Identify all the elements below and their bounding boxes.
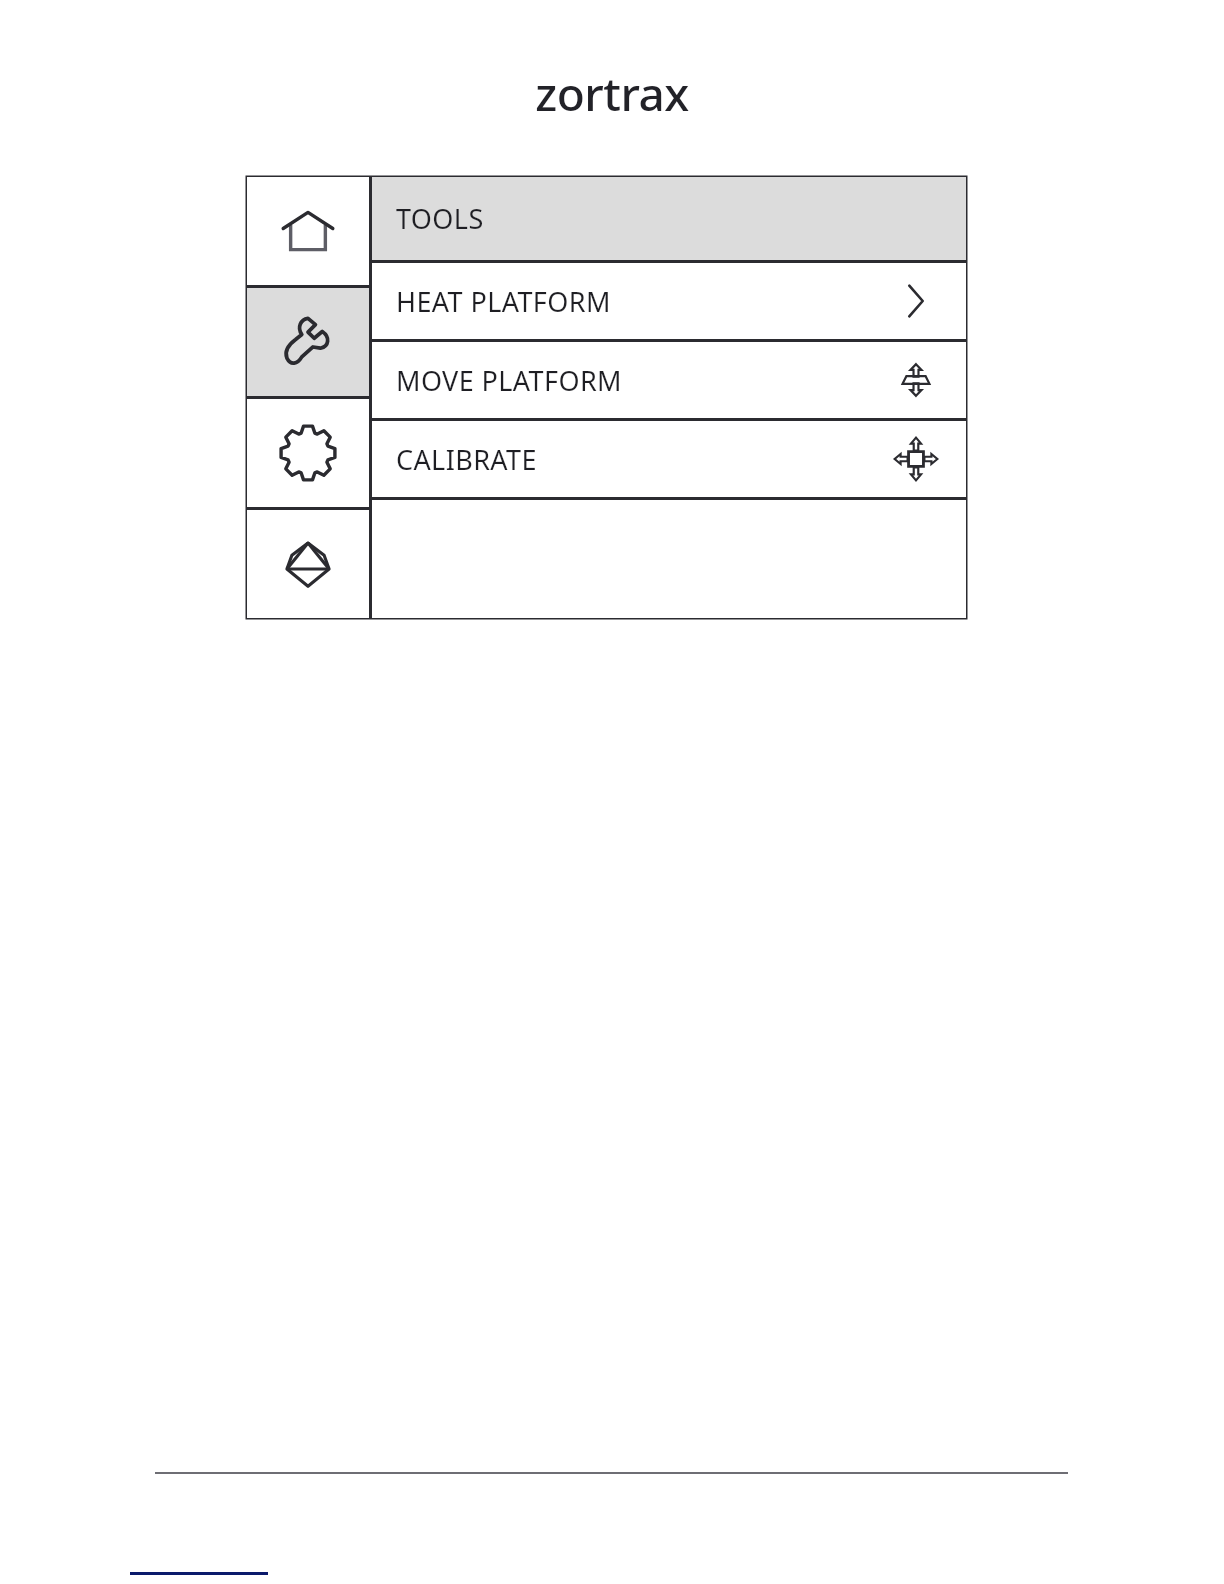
staticText: zortrax	[0, 62, 1224, 125]
staticText: TOOLS	[396, 200, 484, 237]
button[interactable]: Tools	[247, 288, 369, 396]
button[interactable]: Settings	[247, 399, 369, 507]
staticText: CALIBRATE	[396, 441, 537, 478]
staticText: HEAT PLATFORM	[396, 283, 611, 320]
button[interactable]: HEAT PLATFORM	[372, 263, 966, 339]
staticText: MOVE PLATFORM	[396, 362, 622, 399]
button[interactable]: Home	[247, 177, 369, 285]
button[interactable]: CALIBRATE	[372, 421, 966, 497]
button[interactable]: MOVE PLATFORM	[372, 342, 966, 418]
button[interactable]: Models	[247, 510, 369, 618]
